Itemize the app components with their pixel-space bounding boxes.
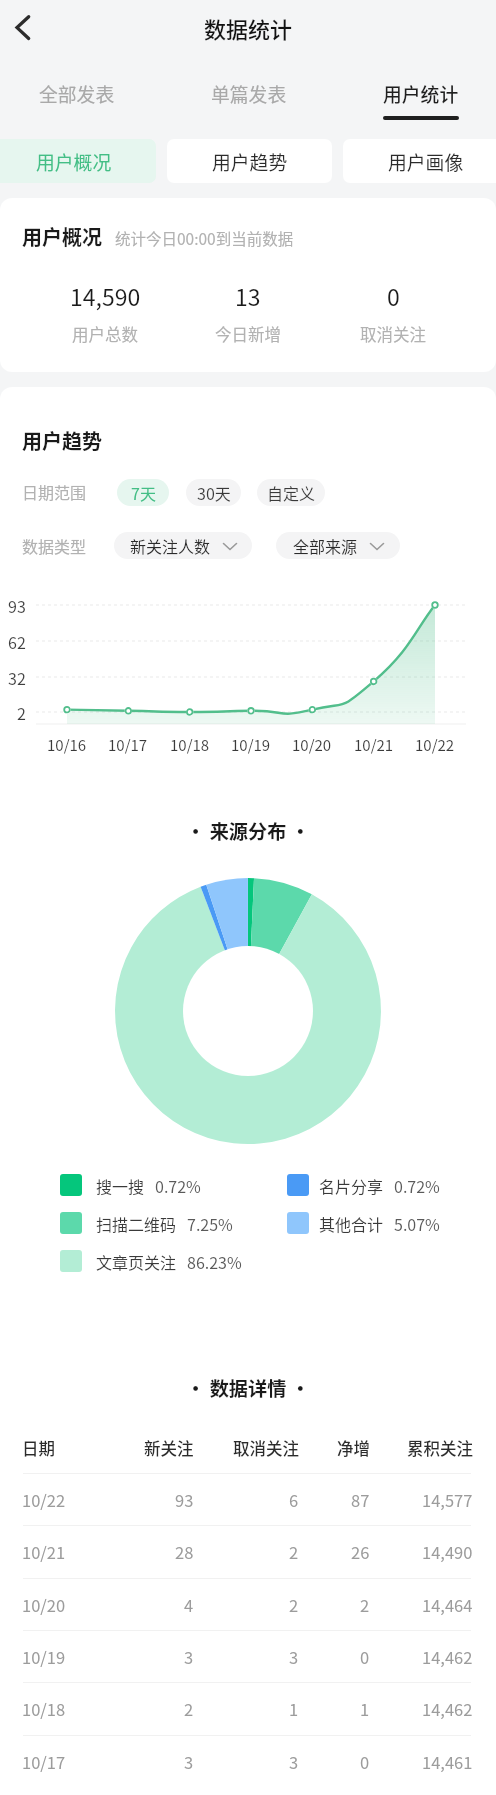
staticText: 7.25%: [187, 1212, 233, 1235]
staticText: 0.72%: [394, 1174, 440, 1197]
button[interactable]: 全部发表: [0, 62, 163, 125]
staticText: 10/22: [415, 734, 455, 756]
staticText: 4: [184, 1593, 194, 1617]
button[interactable]: 全部来源: [276, 532, 400, 559]
staticText: 用户趋势: [22, 426, 102, 455]
staticText: 87: [351, 1488, 370, 1512]
staticText: 10/20: [22, 1593, 66, 1617]
staticText: 0: [387, 279, 400, 312]
button[interactable]: 7天: [117, 479, 169, 506]
staticText: 14,590: [70, 279, 141, 312]
staticText: 取消关注: [360, 322, 426, 346]
staticText: 14,577: [422, 1488, 473, 1512]
staticText: 用户统计: [383, 80, 459, 107]
staticText: 其他合计: [319, 1212, 384, 1235]
staticText: 10/16: [47, 734, 87, 756]
button[interactable]: 13: [168, 279, 328, 346]
staticText: 7天: [131, 481, 156, 504]
staticText: 用户概况: [22, 222, 102, 251]
button[interactable]: 文章页关注: [60, 1249, 242, 1273]
staticText: 10/17: [108, 734, 148, 756]
button[interactable]: 扫描二维码: [60, 1211, 233, 1235]
staticText: 86.23%: [187, 1250, 242, 1273]
staticText: 6: [289, 1488, 299, 1512]
staticText: 30天: [197, 481, 231, 504]
staticText: 用户概况: [36, 148, 112, 175]
staticText: 10/20: [292, 734, 332, 756]
staticText: 统计今日00:00到当前数据: [115, 227, 294, 249]
staticText: 28: [175, 1540, 194, 1564]
staticText: 日期范围: [22, 480, 87, 503]
button[interactable]: 用户趋势: [167, 139, 332, 183]
staticText: 新关注人数: [130, 534, 211, 557]
staticText: 3: [289, 1645, 299, 1669]
staticText: 5.07%: [394, 1212, 440, 1235]
staticText: 26: [351, 1540, 370, 1564]
staticText: 用户总数: [72, 322, 138, 346]
staticText: 10/17: [22, 1750, 66, 1774]
button[interactable]: 搜一搜: [60, 1173, 201, 1197]
staticText: 3: [289, 1750, 299, 1774]
button[interactable]: [0, 1525, 496, 1577]
staticText: 3: [184, 1645, 194, 1669]
staticText: 10/19: [231, 734, 271, 756]
staticText: 新关注: [144, 1436, 194, 1460]
button[interactable]: 其他合计: [287, 1211, 440, 1235]
button[interactable]: 30天: [186, 479, 241, 506]
staticText: 取消关注: [233, 1436, 299, 1460]
button[interactable]: 用户统计: [335, 62, 496, 125]
staticText: 10/22: [22, 1488, 66, 1512]
button[interactable]: [0, 1473, 496, 1525]
staticText: 单篇发表: [211, 80, 287, 107]
staticText: 用户画像: [388, 148, 464, 175]
staticText: 用户趋势: [212, 148, 288, 175]
staticText: 14,464: [422, 1593, 473, 1617]
button[interactable]: 用户画像: [343, 139, 496, 183]
staticText: 扫描二维码: [96, 1212, 177, 1235]
staticText: 文章页关注: [96, 1250, 177, 1273]
staticText: 13: [235, 279, 261, 312]
button[interactable]: 用户概况: [0, 139, 156, 183]
staticText: · 数据详情 ·: [98, 1374, 398, 1402]
button[interactable]: 0: [313, 279, 473, 346]
staticText: 数据统计: [98, 12, 398, 44]
staticText: 日期: [22, 1436, 55, 1460]
staticText: 2: [360, 1593, 370, 1617]
button[interactable]: 新关注人数: [114, 532, 252, 559]
staticText: 全部发表: [39, 80, 115, 107]
staticText: 净增: [337, 1436, 370, 1460]
staticText: 14,462: [422, 1697, 473, 1721]
staticText: 今日新增: [215, 322, 281, 346]
button[interactable]: 名片分享: [287, 1173, 440, 1197]
staticText: 10/19: [22, 1645, 66, 1669]
button[interactable]: [0, 1578, 496, 1630]
staticText: 14,490: [422, 1540, 473, 1564]
button[interactable]: [0, 1682, 496, 1734]
staticText: 10/21: [354, 734, 394, 756]
staticText: 10/21: [22, 1540, 66, 1564]
staticText: 名片分享: [319, 1174, 384, 1197]
staticText: 14,461: [422, 1750, 473, 1774]
staticText: 32: [8, 666, 26, 689]
staticText: 搜一搜: [96, 1174, 145, 1197]
button[interactable]: [0, 1735, 496, 1787]
staticText: 2: [289, 1593, 299, 1617]
staticText: 0.72%: [155, 1174, 201, 1197]
staticText: 全部来源: [293, 534, 358, 557]
staticText: 62: [8, 630, 26, 653]
staticText: 2: [17, 701, 26, 724]
staticText: 93: [8, 594, 26, 617]
staticText: 14,462: [422, 1645, 473, 1669]
staticText: 2: [289, 1540, 299, 1564]
button[interactable]: 14,590: [25, 279, 185, 346]
button[interactable]: [0, 1630, 496, 1682]
staticText: 1: [360, 1697, 370, 1721]
staticText: 自定义: [267, 481, 316, 504]
staticText: 3: [184, 1750, 194, 1774]
staticText: 0: [360, 1645, 370, 1669]
staticText: 1: [289, 1697, 299, 1721]
button[interactable]: 自定义: [257, 479, 325, 506]
button[interactable]: 单篇发表: [163, 62, 335, 125]
button[interactable]: Back: [0, 5, 45, 50]
staticText: 数据类型: [22, 534, 87, 557]
